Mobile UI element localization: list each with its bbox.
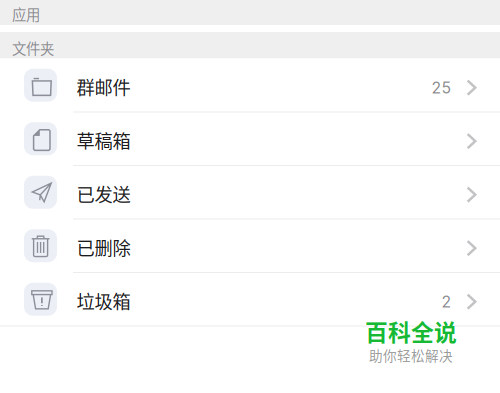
staticText: 百科全说 (365, 314, 457, 347)
staticText: 助你轻松解决 (369, 345, 453, 365)
button[interactable]: 群邮件 (0, 58, 500, 112)
button[interactable]: 已删除 (0, 219, 500, 272)
staticText: 草稿箱 (76, 127, 130, 153)
button[interactable]: 已发送 (0, 165, 500, 219)
staticText: 群邮件 (76, 73, 130, 100)
staticText: 25 (431, 78, 451, 97)
staticText: 文件夹 (12, 37, 54, 58)
staticText: 已发送 (76, 180, 130, 207)
staticText: 2 (441, 292, 451, 311)
staticText: 已删除 (76, 234, 130, 260)
staticText: 应用 (12, 3, 40, 24)
button[interactable]: 垃圾箱 (0, 272, 500, 326)
button[interactable]: 草稿箱 (0, 112, 500, 165)
staticText: 垃圾箱 (76, 287, 130, 314)
